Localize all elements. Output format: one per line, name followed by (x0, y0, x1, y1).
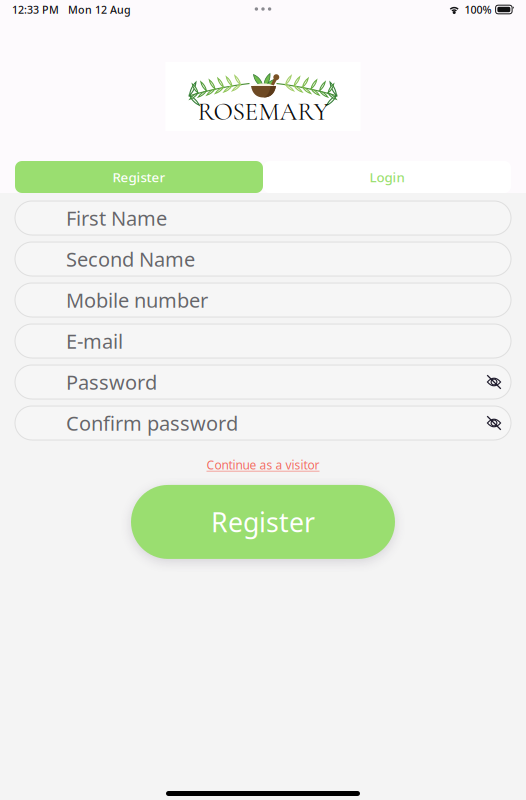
staticText: E-mail (66, 328, 123, 354)
staticText: Mon 12 Aug (59, 2, 131, 17)
staticText: Confirm password (66, 410, 238, 436)
staticText: Password (66, 369, 157, 395)
button[interactable]: Continue as a visitor (206, 457, 319, 473)
staticText: ROSEMARY (197, 96, 328, 127)
staticText: Continue as a visitor (206, 457, 319, 473)
staticText: 100% (464, 2, 491, 17)
staticText: First Name (66, 205, 167, 231)
button[interactable]: Login (263, 161, 511, 193)
button[interactable]: Register (15, 161, 263, 193)
button[interactable]: Show Confirm password (486, 415, 502, 431)
staticText: 12:33 PM (12, 2, 59, 17)
staticText: Register (211, 504, 315, 540)
staticText: Login (369, 168, 404, 186)
button[interactable]: Show Password (486, 374, 502, 390)
staticText: Mobile number (66, 287, 208, 313)
button[interactable]: Register (131, 485, 395, 559)
staticText: Second Name (66, 246, 195, 272)
staticText: Register (112, 168, 165, 186)
